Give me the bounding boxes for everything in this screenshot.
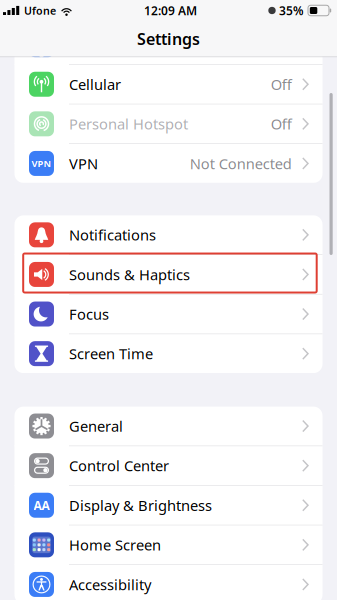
staticText: Screen Time — [69, 344, 153, 363]
button[interactable]: VPN — [14, 144, 322, 183]
staticText: Display & Brightness — [69, 495, 212, 515]
button[interactable]: Focus — [14, 295, 322, 333]
staticText: 35% — [279, 2, 304, 18]
button[interactable]: Personal Hotspot — [14, 104, 322, 143]
staticText: Notifications — [69, 225, 156, 245]
button[interactable]: Accessibility — [14, 565, 322, 600]
staticText: Off — [271, 114, 292, 134]
staticText: Settings — [137, 28, 200, 49]
button[interactable]: Notifications — [14, 215, 322, 254]
staticText: Not Connected — [190, 154, 292, 173]
staticText: General — [69, 416, 123, 436]
button[interactable]: Control Center — [14, 446, 322, 485]
button[interactable]: Sounds & Haptics — [14, 255, 322, 294]
staticText: 12:09 AM — [144, 2, 197, 18]
staticText: Off — [271, 74, 292, 94]
staticText: Accessibility — [69, 575, 151, 594]
button[interactable]: AA — [14, 486, 322, 525]
staticText: Ufone — [24, 3, 56, 18]
staticText: VPN — [69, 154, 98, 173]
staticText: Cellular — [69, 74, 121, 94]
staticText: Home Screen — [69, 535, 161, 555]
staticText: Focus — [69, 304, 109, 324]
staticText: AA — [33, 497, 49, 513]
staticText: Control Center — [69, 456, 169, 475]
button[interactable]: Cellular — [14, 65, 322, 104]
button[interactable]: Wi-Fi — [14, 25, 322, 64]
staticText: VPN — [31, 157, 51, 170]
staticText: Sounds & Haptics — [69, 265, 190, 284]
staticText: Personal Hotspot — [69, 114, 188, 134]
button[interactable]: General — [14, 407, 322, 445]
button[interactable]: Home Screen — [14, 525, 322, 564]
button[interactable]: Screen Time — [14, 334, 322, 373]
